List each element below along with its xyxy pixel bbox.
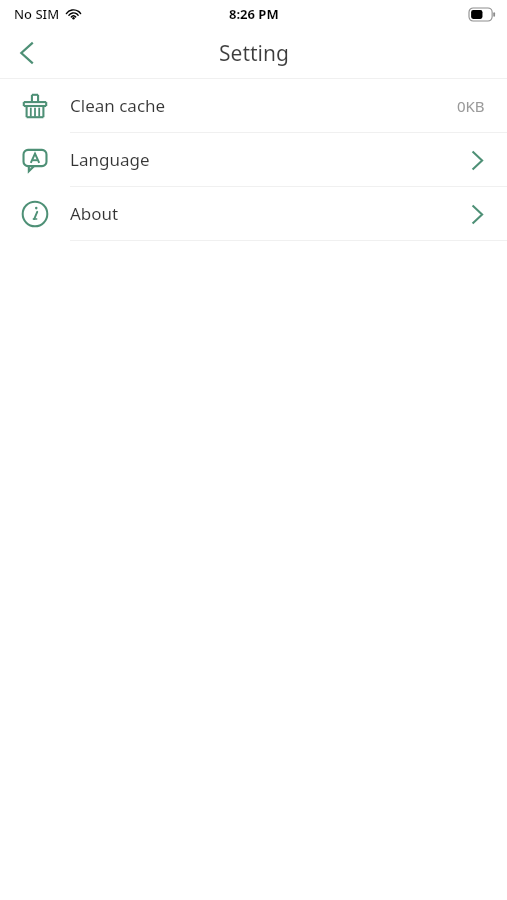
button[interactable]: Clean cache [0, 79, 507, 132]
staticText: About [70, 202, 465, 225]
staticText: Language [70, 148, 465, 171]
staticText: Setting [219, 39, 289, 68]
staticText: Clean cache [70, 94, 457, 117]
button[interactable]: Back [0, 28, 52, 78]
staticText: 0KB [457, 96, 485, 116]
button[interactable]: About [0, 187, 507, 240]
staticText: 8:26 PM [229, 5, 279, 23]
staticText: No SIM [14, 5, 60, 23]
button[interactable]: Language [0, 133, 507, 186]
